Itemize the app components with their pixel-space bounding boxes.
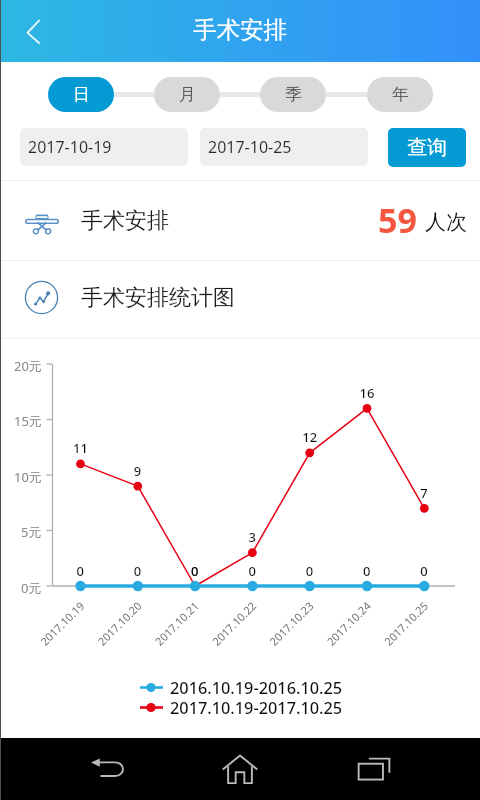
staticText: 手术安排	[81, 207, 169, 235]
staticText: 月	[179, 84, 196, 105]
staticText: 季	[285, 84, 302, 105]
staticText: 查询	[407, 135, 447, 160]
staticText: 2017-10-19	[28, 136, 112, 158]
button[interactable]: Back	[68, 738, 148, 800]
button[interactable]: 2017-10-19	[20, 128, 188, 166]
button[interactable]: 日	[48, 77, 114, 112]
staticText: 手术安排	[193, 15, 287, 45]
staticText: 59	[378, 197, 417, 243]
button[interactable]: Recent apps	[334, 738, 414, 800]
button[interactable]: Home	[200, 738, 280, 800]
button[interactable]: Back	[10, 9, 56, 55]
button[interactable]: 年	[367, 77, 433, 112]
staticText: 日	[73, 84, 90, 105]
button[interactable]: 季	[260, 77, 326, 112]
button[interactable]: 查询	[388, 128, 466, 167]
button[interactable]: 月	[154, 77, 220, 112]
button[interactable]: 手术安排统计图	[0, 261, 480, 338]
staticText: 2017-10-25	[208, 136, 292, 158]
button[interactable]: 手术安排	[0, 181, 480, 260]
staticText: 人次	[425, 209, 467, 235]
staticText: 手术安排统计图	[81, 284, 235, 312]
staticText: 年	[392, 84, 409, 105]
button[interactable]: 2017-10-25	[200, 128, 368, 166]
